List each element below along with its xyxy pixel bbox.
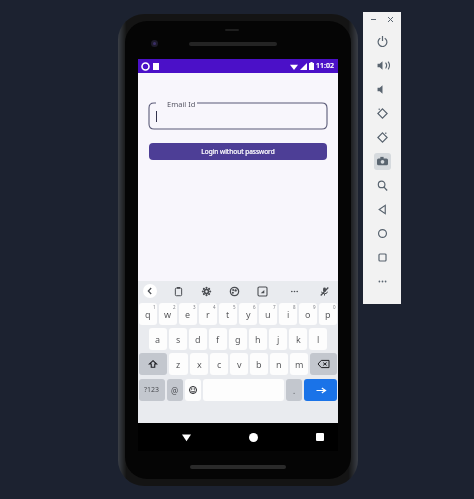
button[interactable]: Back	[363, 197, 401, 221]
button[interactable]: Minimize	[368, 14, 379, 25]
staticText: z	[176, 358, 181, 370]
button[interactable]: Back	[143, 284, 157, 298]
staticText: c	[217, 358, 222, 370]
button[interactable]: Volume up	[363, 53, 401, 77]
button[interactable]: y	[239, 303, 257, 325]
button[interactable]: z	[169, 353, 188, 375]
staticText: u	[265, 308, 271, 320]
button[interactable]: Enter	[304, 379, 337, 401]
button[interactable]: .	[286, 379, 302, 401]
staticText: v	[237, 358, 242, 370]
staticText: 0	[333, 304, 336, 310]
button[interactable]: t	[219, 303, 237, 325]
button[interactable]: Emoji	[185, 379, 201, 401]
button[interactable]: More options	[287, 284, 301, 298]
button[interactable]: v	[230, 353, 248, 375]
button[interactable]: u	[259, 303, 277, 325]
staticText: i	[287, 308, 290, 320]
staticText: l	[317, 333, 320, 345]
staticText: o	[305, 308, 311, 320]
staticText: r	[206, 308, 210, 320]
staticText: @	[171, 385, 179, 396]
staticText: h	[255, 333, 261, 345]
button[interactable]: Close	[385, 14, 396, 25]
button[interactable]: f	[209, 328, 227, 350]
button[interactable]: Themes	[227, 284, 241, 298]
staticText: 7	[273, 304, 276, 310]
button[interactable]: Zoom	[363, 173, 401, 197]
button[interactable]: Settings	[199, 284, 213, 298]
button[interactable]: @	[167, 379, 183, 401]
staticText: m	[295, 358, 304, 370]
button[interactable]: Volume down	[363, 77, 401, 101]
button[interactable]: More	[363, 269, 401, 293]
staticText: 3	[193, 304, 196, 310]
button[interactable]: e	[179, 303, 197, 325]
button[interactable]: Hide keyboard	[174, 425, 198, 449]
button[interactable]: o	[299, 303, 317, 325]
button[interactable]: x	[190, 353, 208, 375]
button[interactable]: h	[249, 328, 267, 350]
staticText: b	[256, 358, 262, 370]
button[interactable]: q	[139, 303, 157, 325]
button[interactable]: Home	[363, 221, 401, 245]
button[interactable]: d	[189, 328, 207, 350]
staticText: g	[235, 333, 241, 345]
staticText: s	[176, 333, 181, 345]
button[interactable]: Backspace	[310, 353, 337, 375]
staticText: .	[293, 385, 296, 396]
staticText: 1	[153, 304, 156, 310]
staticText: 5	[233, 304, 236, 310]
staticText: y	[246, 308, 251, 320]
button[interactable]: l	[309, 328, 327, 350]
button[interactable]	[149, 103, 327, 129]
button[interactable]: Rotate left	[363, 101, 401, 125]
staticText: f	[216, 333, 220, 345]
button[interactable]: m	[290, 353, 308, 375]
button[interactable]: Overview	[363, 245, 401, 269]
button[interactable]: Recent apps	[308, 425, 332, 449]
button[interactable]: Home	[241, 425, 265, 449]
button[interactable]: Login without password	[149, 143, 327, 160]
button[interactable]: ?123	[139, 379, 165, 401]
staticText: 8	[293, 304, 296, 310]
staticText: 4	[213, 304, 216, 310]
button[interactable]: Rotate right	[363, 125, 401, 149]
button[interactable]: j	[269, 328, 287, 350]
button[interactable]: p	[319, 303, 337, 325]
staticText: q	[145, 308, 151, 320]
staticText: Email Id	[167, 99, 196, 109]
button[interactable]: a	[149, 328, 167, 350]
button[interactable]: w	[159, 303, 177, 325]
button[interactable]: b	[250, 353, 268, 375]
staticText: Login without password	[201, 147, 275, 156]
staticText: n	[276, 358, 282, 370]
button[interactable]: Clipboard	[171, 284, 185, 298]
button[interactable]: c	[210, 353, 228, 375]
button[interactable]: Voice input off	[317, 284, 331, 298]
button[interactable]: GIF	[255, 284, 269, 298]
staticText: e	[185, 308, 191, 320]
button[interactable]: k	[289, 328, 307, 350]
button[interactable]: n	[270, 353, 288, 375]
button[interactable]: Power	[363, 29, 401, 53]
button[interactable]: Shift	[139, 353, 167, 375]
staticText: 6	[253, 304, 256, 310]
staticText: d	[195, 333, 201, 345]
staticText: 2	[173, 304, 176, 310]
staticText: p	[325, 308, 331, 320]
button[interactable]: s	[169, 328, 187, 350]
button[interactable]: i	[279, 303, 297, 325]
staticText: k	[296, 333, 301, 345]
staticText: x	[197, 358, 202, 370]
staticText: 9	[313, 304, 316, 310]
button[interactable]: Take screenshot	[363, 149, 401, 173]
staticText: j	[277, 333, 280, 345]
staticText: a	[155, 333, 161, 345]
staticText: t	[226, 308, 230, 320]
button[interactable]: g	[229, 328, 247, 350]
staticText: ?123	[144, 385, 160, 395]
staticText: 11:02	[316, 61, 334, 71]
button[interactable]: r	[199, 303, 217, 325]
